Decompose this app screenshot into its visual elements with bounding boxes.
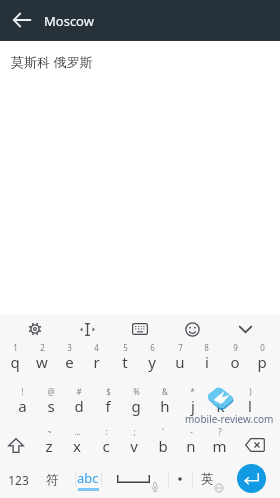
staticText: 3 [67, 342, 72, 352]
button[interactable]: 4 [83, 342, 110, 381]
staticText: 5 [123, 342, 128, 352]
staticText: abc [77, 469, 99, 487]
staticText: f [105, 396, 111, 416]
staticText: : [105, 426, 108, 436]
button[interactable]: ; [120, 426, 147, 465]
staticText: t [122, 352, 128, 372]
staticText: c [102, 436, 110, 456]
staticText: 符 [46, 472, 59, 488]
button[interactable] [108, 464, 158, 494]
staticText: 7 [178, 342, 183, 352]
staticText: 莫斯科 俄罗斯 [11, 53, 93, 71]
button[interactable] [71, 315, 104, 343]
button[interactable]: 英 [193, 464, 221, 494]
button[interactable]: - [177, 426, 204, 465]
staticText: ! [21, 386, 24, 396]
button[interactable]: % [122, 386, 149, 425]
button[interactable] [19, 315, 51, 343]
button[interactable]: 3 [56, 342, 83, 381]
staticText: q [10, 352, 20, 372]
staticText: g [131, 396, 141, 416]
staticText: s [47, 396, 55, 416]
staticText: l [248, 396, 252, 416]
staticText: 123 [8, 472, 29, 488]
button[interactable]: ! [9, 386, 36, 425]
button[interactable]: 8 [193, 342, 220, 381]
button[interactable]: 符 [37, 465, 67, 495]
staticText: w [36, 352, 48, 372]
button[interactable]: ) [236, 386, 263, 425]
button[interactable] [176, 315, 209, 343]
staticText: & [162, 386, 168, 396]
staticText: y [148, 352, 156, 372]
staticText: o [230, 352, 240, 372]
staticText: - [190, 426, 193, 436]
staticText: 4 [94, 342, 99, 352]
staticText: mobile-review.com [185, 412, 274, 426]
staticText: k [216, 396, 225, 416]
staticText: ; [133, 426, 136, 436]
staticText: b [158, 436, 168, 456]
button[interactable] [2, 430, 30, 460]
staticText: h [160, 396, 170, 416]
button[interactable]: 123 [1, 465, 35, 495]
button[interactable] [229, 315, 261, 343]
staticText: ) [249, 386, 252, 396]
staticText: ? [218, 426, 222, 436]
staticText: x [73, 436, 81, 456]
button[interactable]: 6 [138, 342, 165, 381]
button[interactable]: abc [74, 464, 102, 494]
staticText: 2 [40, 342, 45, 352]
staticText: $ [106, 386, 111, 396]
staticText: p [257, 352, 267, 372]
staticText: r [93, 352, 100, 372]
staticText: u [175, 352, 185, 372]
staticText: 0 [260, 342, 265, 352]
staticText: a [18, 396, 27, 416]
button[interactable]: 0 [248, 342, 275, 381]
staticText: … [74, 426, 81, 436]
button[interactable]: 5 [111, 342, 138, 381]
button[interactable]: ~ [35, 426, 62, 465]
staticText: ~ [47, 426, 52, 436]
button[interactable]: 1 [1, 342, 28, 381]
staticText: 6 [150, 342, 155, 352]
staticText: 8 [204, 342, 209, 352]
staticText: d [74, 396, 84, 416]
staticText: z [45, 436, 53, 456]
button[interactable]: # [65, 386, 92, 425]
staticText: e [65, 352, 74, 372]
staticText: @ [47, 386, 55, 396]
staticText: * [190, 386, 195, 396]
staticText: m [212, 436, 227, 456]
staticText: ' [162, 426, 164, 436]
staticText: # [76, 386, 82, 396]
button[interactable] [170, 464, 190, 494]
staticText: n [186, 436, 196, 456]
button[interactable] [124, 315, 156, 343]
staticText: 9 [233, 342, 238, 352]
button[interactable]: & [151, 386, 178, 425]
staticText: 英 [201, 471, 214, 487]
button[interactable]: … [63, 426, 90, 465]
button[interactable] [240, 430, 270, 460]
button[interactable] [237, 464, 266, 493]
staticText: i [205, 352, 209, 372]
button[interactable]: @ [37, 386, 64, 425]
staticText: j [191, 396, 195, 416]
button[interactable] [6, 5, 38, 35]
button[interactable]: ( [207, 386, 234, 425]
button[interactable]: 9 [221, 342, 248, 381]
button[interactable]: : [92, 426, 119, 465]
staticText: v [130, 436, 138, 456]
button[interactable]: ? [206, 426, 233, 465]
staticText: 1 [13, 342, 18, 352]
button[interactable]: ' [149, 426, 176, 465]
staticText: ( [219, 386, 222, 396]
button[interactable]: 2 [28, 342, 55, 381]
staticText: Moscow [44, 12, 94, 30]
button[interactable]: 7 [166, 342, 193, 381]
staticText: % [133, 386, 140, 396]
button[interactable]: $ [94, 386, 121, 425]
button[interactable]: * [179, 386, 206, 425]
